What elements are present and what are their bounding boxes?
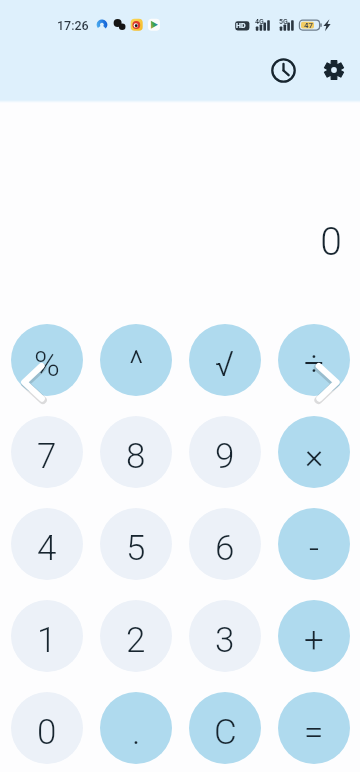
staticText: 0	[37, 712, 57, 753]
staticText: 7	[37, 436, 57, 477]
button[interactable]: 0	[11, 692, 83, 764]
button[interactable]: History	[263, 50, 303, 90]
button[interactable]: Divide	[278, 324, 350, 396]
staticText: 3	[215, 620, 235, 661]
button[interactable]: Square root	[189, 324, 261, 396]
button[interactable]: Multiply	[278, 416, 350, 488]
staticText: √	[215, 344, 235, 385]
button[interactable]: 2	[100, 600, 172, 672]
button[interactable]: 4	[11, 508, 83, 580]
staticText: =	[304, 712, 324, 753]
staticText: ÷	[304, 344, 324, 385]
staticText: 9	[215, 436, 235, 477]
button[interactable]: 5	[100, 508, 172, 580]
staticText: .	[132, 712, 141, 753]
staticText: 5G	[279, 18, 288, 26]
staticText: 1	[37, 620, 57, 661]
button[interactable]: Clear	[189, 692, 261, 764]
staticText: -	[309, 528, 320, 569]
staticText: 4	[37, 528, 57, 569]
staticText: HD	[236, 22, 246, 30]
staticText: %	[34, 344, 60, 385]
staticText: 17:26	[57, 18, 89, 33]
staticText: +	[304, 620, 324, 661]
button[interactable]: Plus	[278, 600, 350, 672]
staticText: 47	[304, 21, 314, 30]
staticText: ^	[129, 344, 144, 385]
button[interactable]: 8	[100, 416, 172, 488]
staticText: 6	[215, 528, 235, 569]
staticText: ×	[305, 436, 324, 477]
button[interactable]: 1	[11, 600, 83, 672]
staticText: 2	[126, 620, 146, 661]
staticText: C	[214, 712, 237, 753]
button[interactable]: 6	[189, 508, 261, 580]
button[interactable]: 3	[189, 600, 261, 672]
button[interactable]: Percent	[11, 324, 83, 396]
button[interactable]: 7	[11, 416, 83, 488]
button[interactable]: Power	[100, 324, 172, 396]
staticText: 0	[0, 219, 342, 265]
button[interactable]: Decimal point	[100, 692, 172, 764]
button[interactable]: 9	[189, 416, 261, 488]
button[interactable]: Settings	[314, 50, 354, 90]
staticText: 8	[126, 436, 146, 477]
staticText: 4G	[255, 18, 264, 26]
button[interactable]: Equals	[278, 692, 350, 764]
button[interactable]: Minus	[278, 508, 350, 580]
staticText: 5	[126, 528, 146, 569]
